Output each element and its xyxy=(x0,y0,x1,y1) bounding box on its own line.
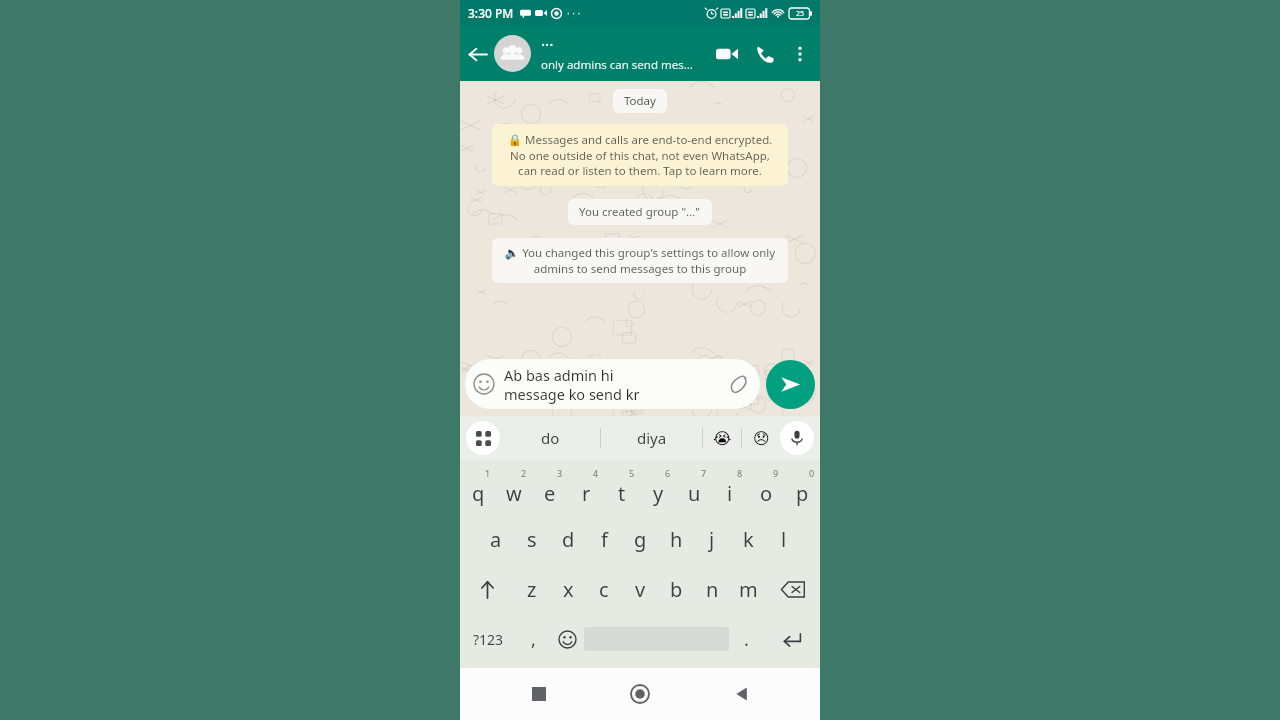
staticText: . xyxy=(744,627,749,652)
staticText: g xyxy=(634,526,647,553)
button[interactable]: Emoji xyxy=(550,614,584,664)
button[interactable]: Shift xyxy=(460,564,514,614)
button[interactable]: j xyxy=(694,514,730,564)
button[interactable]: Back xyxy=(460,37,494,71)
button[interactable]: Ab bas admin hi message ko send kr xyxy=(465,359,760,409)
staticText: f xyxy=(601,526,608,553)
staticText: Ab bas admin hi message ko send kr xyxy=(504,365,726,404)
staticText: ?123 xyxy=(473,630,504,649)
button[interactable]: b xyxy=(658,564,694,614)
button[interactable]: Today xyxy=(613,89,667,113)
button[interactable]: n xyxy=(694,564,730,614)
staticText: 9 xyxy=(773,467,779,479)
staticText: 6 xyxy=(665,467,671,479)
staticText: Today xyxy=(624,93,656,109)
button[interactable]: Voice input xyxy=(780,421,814,455)
button[interactable]: ?123 xyxy=(460,614,516,664)
staticText: z xyxy=(527,576,537,603)
staticText: 😭 xyxy=(713,429,732,448)
button[interactable]: Attach xyxy=(726,371,752,397)
staticText: ··· xyxy=(541,34,554,54)
staticText: 5 xyxy=(629,467,635,479)
staticText: , xyxy=(531,627,536,652)
staticText: a xyxy=(490,526,502,553)
button[interactable]: 😞 xyxy=(742,416,780,460)
button[interactable]: 🔒 Messages and calls are end-to-end encr… xyxy=(492,124,788,186)
button[interactable]: 0 xyxy=(784,465,820,514)
button[interactable]: 4 xyxy=(568,465,604,514)
button[interactable]: 6 xyxy=(640,465,676,514)
button[interactable]: 2 xyxy=(496,465,532,514)
button[interactable]: 😭 xyxy=(703,416,741,460)
staticText: k xyxy=(743,526,754,553)
staticText: w xyxy=(506,480,522,507)
staticText: h xyxy=(670,526,683,553)
staticText: m xyxy=(739,576,758,603)
button[interactable]: You created group "..." xyxy=(568,199,712,225)
button[interactable]: 5 xyxy=(604,465,640,514)
staticText: diya xyxy=(637,428,667,448)
staticText: j xyxy=(709,526,715,553)
staticText: v xyxy=(635,576,646,603)
button[interactable]: Recent apps xyxy=(516,671,562,717)
button[interactable]: More options xyxy=(784,38,816,70)
button[interactable]: Back xyxy=(719,671,765,717)
staticText: 3:30 PM xyxy=(468,5,514,21)
button[interactable]: 8 xyxy=(712,465,748,514)
button[interactable]: 7 xyxy=(676,465,712,514)
button[interactable]: Backspace xyxy=(766,564,820,614)
staticText: u xyxy=(688,480,701,507)
button[interactable]: ··· xyxy=(541,34,708,73)
button[interactable]: z xyxy=(514,564,550,614)
button[interactable]: s xyxy=(514,514,550,564)
button[interactable]: Group photo xyxy=(494,35,531,72)
button[interactable]: l xyxy=(766,514,802,564)
button[interactable]: , xyxy=(516,614,550,664)
staticText: 7 xyxy=(701,467,707,479)
staticText: i xyxy=(727,480,733,507)
button[interactable]: 1 xyxy=(460,465,496,514)
staticText: 4 xyxy=(593,467,599,479)
button[interactable]: Enter xyxy=(763,614,820,664)
button[interactable]: Video call xyxy=(708,35,746,73)
button[interactable]: v xyxy=(622,564,658,614)
button[interactable]: a xyxy=(478,514,514,564)
button[interactable]: f xyxy=(586,514,622,564)
button[interactable]: Home xyxy=(617,671,663,717)
staticText: n xyxy=(706,576,719,603)
staticText: 🔈 You changed this group's settings to a… xyxy=(502,245,778,276)
staticText: p xyxy=(796,480,809,507)
button[interactable]: h xyxy=(658,514,694,564)
staticText: 🔒 Messages and calls are end-to-end encr… xyxy=(502,132,778,178)
button[interactable]: do xyxy=(500,416,600,460)
button[interactable]: g xyxy=(622,514,658,564)
button[interactable]: . xyxy=(729,614,763,664)
button[interactable]: 🔈 You changed this group's settings to a… xyxy=(492,238,788,283)
staticText: 25 xyxy=(796,9,805,19)
button[interactable]: c xyxy=(586,564,622,614)
button[interactable]: x xyxy=(550,564,586,614)
staticText: q xyxy=(472,480,485,507)
staticText: d xyxy=(562,526,575,553)
button[interactable]: k xyxy=(730,514,766,564)
staticText: 0 xyxy=(809,467,815,479)
staticText: only admins can send mes… xyxy=(541,57,693,73)
button[interactable]: Keyboard toolbar xyxy=(466,421,500,455)
button[interactable]: Send xyxy=(766,360,815,409)
staticText: · · · xyxy=(567,6,581,20)
button[interactable]: diya xyxy=(601,416,702,460)
staticText: x xyxy=(563,576,574,603)
button[interactable]: 3 xyxy=(532,465,568,514)
button[interactable]: 9 xyxy=(748,465,784,514)
button[interactable]: m xyxy=(730,564,766,614)
staticText: t xyxy=(618,480,626,507)
button[interactable]: d xyxy=(550,514,586,564)
staticText: do xyxy=(541,428,560,448)
button[interactable]: Voice call xyxy=(746,35,784,73)
staticText: c xyxy=(599,576,609,603)
staticText: 8 xyxy=(737,467,743,479)
staticText: 2 xyxy=(521,467,527,479)
staticText: e xyxy=(544,480,556,507)
staticText: o xyxy=(760,480,773,507)
